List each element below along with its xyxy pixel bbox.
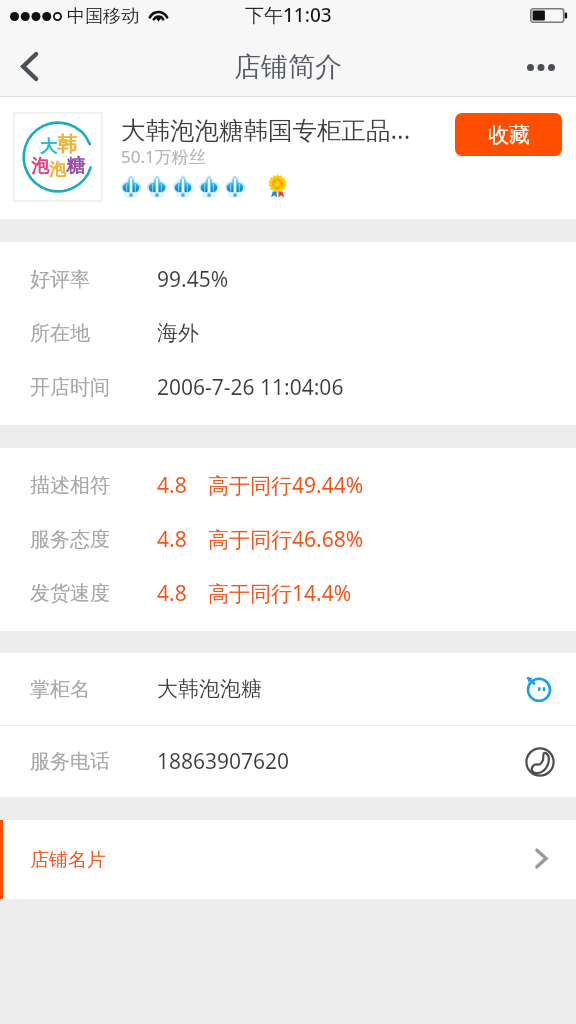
button[interactable]: 掌柜名: [0, 653, 576, 725]
staticText: 4.8: [157, 525, 187, 554]
staticText: 糖: [66, 154, 85, 178]
staticText: 所在地: [30, 321, 90, 346]
staticText: 服务电话: [30, 749, 110, 774]
button[interactable]: 服务电话: [0, 726, 576, 797]
button[interactable]: Chat with seller: [523, 673, 555, 705]
staticText: 大韩泡泡糖韩国专柜正品...: [121, 113, 421, 146]
staticText: 韩: [57, 132, 77, 157]
button[interactable]: 收藏: [455, 113, 562, 156]
staticText: 高于同行46.68%: [208, 525, 364, 554]
staticText: 海外: [157, 320, 199, 346]
staticText: 大韩泡泡糖: [157, 676, 262, 702]
button[interactable]: 描述相符: [0, 458, 576, 512]
button[interactable]: 好评率: [0, 252, 576, 306]
staticText: 泡: [49, 159, 66, 180]
staticText: 掌柜名: [30, 677, 90, 702]
staticText: 高于同行49.44%: [208, 471, 364, 500]
staticText: 50.1万粉丝: [121, 145, 206, 168]
staticText: 好评率: [30, 267, 90, 292]
staticText: 下午11:03: [245, 2, 332, 28]
button[interactable]: More options: [514, 36, 576, 97]
staticText: 2006-7-26 11:04:06: [157, 373, 344, 402]
staticText: 高于同行14.4%: [208, 579, 352, 608]
button[interactable]: 发货速度: [0, 566, 576, 620]
staticText: 描述相符: [30, 473, 110, 498]
staticText: 中国移动: [67, 5, 139, 28]
staticText: 收藏: [488, 122, 530, 148]
staticText: 发货速度: [30, 581, 110, 606]
staticText: 泡: [31, 155, 49, 178]
staticText: 4.8: [157, 579, 187, 608]
button[interactable]: Call service phone: [524, 746, 556, 778]
staticText: 店铺简介: [234, 50, 342, 84]
staticText: 4.8: [157, 471, 187, 500]
button[interactable]: 服务态度: [0, 512, 576, 566]
staticText: 18863907620: [157, 747, 290, 776]
staticText: 开店时间: [30, 375, 110, 400]
button[interactable]: 开店时间: [0, 360, 576, 414]
staticText: 99.45%: [157, 265, 229, 294]
staticText: 大: [40, 136, 57, 157]
staticText: 服务态度: [30, 527, 110, 552]
button[interactable]: Back: [0, 36, 58, 97]
button[interactable]: 店铺名片: [0, 820, 576, 899]
staticText: 店铺名片: [30, 848, 106, 872]
button[interactable]: 所在地: [0, 306, 576, 360]
